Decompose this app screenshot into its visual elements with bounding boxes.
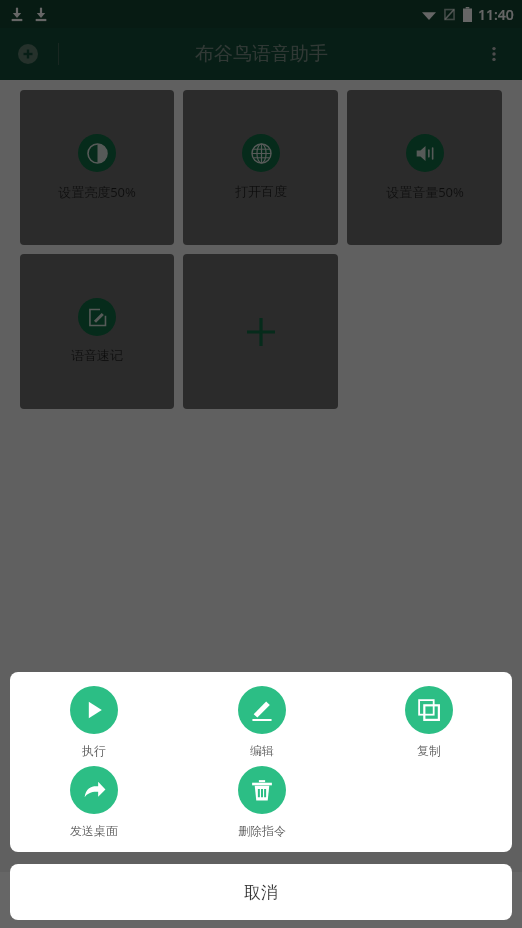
button[interactable]: 取消 xyxy=(10,864,512,920)
button[interactable]: 设置亮度50% xyxy=(20,90,174,245)
button[interactable]: 编辑 xyxy=(178,686,345,758)
staticText: 布谷鸟语音助手 xyxy=(195,42,328,66)
staticText: 11:40 xyxy=(478,5,514,24)
button[interactable]: 我的 xyxy=(311,872,421,928)
staticText: 编辑 xyxy=(250,743,274,758)
button[interactable]: 发送桌面 xyxy=(10,766,178,838)
staticText: 设置音量50% xyxy=(386,183,464,201)
staticText: 复制 xyxy=(417,743,441,758)
staticText: 语音速记 xyxy=(71,347,123,363)
button[interactable]: 删除指令 xyxy=(178,766,345,838)
staticText: 设置亮度50% xyxy=(58,183,136,201)
button[interactable]: 指令 xyxy=(101,872,211,928)
button[interactable]: Add xyxy=(12,38,44,70)
staticText: 取消 xyxy=(244,882,278,903)
button[interactable]: 语音速记 xyxy=(20,254,174,409)
staticText: 打开百度 xyxy=(235,183,287,199)
staticText: 发送桌面 xyxy=(70,823,118,838)
staticText: 执行 xyxy=(82,743,106,758)
staticText: 删除指令 xyxy=(238,823,286,838)
button[interactable]: 打开百度 xyxy=(183,90,338,245)
button[interactable]: 执行 xyxy=(10,686,178,758)
button[interactable]: 设置音量50% xyxy=(347,90,502,245)
button[interactable]: 复制 xyxy=(345,686,512,758)
button[interactable]: More options xyxy=(474,34,514,74)
